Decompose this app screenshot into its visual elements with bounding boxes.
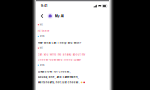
staticText: ME (40, 23, 43, 26)
staticText: My AI (55, 14, 64, 18)
staticText: ME (40, 47, 43, 49)
staticText: MY AI (40, 35, 45, 37)
staticText: Hey! What can I help you with? (38, 41, 81, 44)
button[interactable]: My AI (45, 13, 64, 19)
staticText: Gouda, brie, and camembert, (38, 75, 79, 78)
staticText: Melts hearts, not just cheese. (38, 81, 80, 84)
staticText: Can you write me a haiku about my (38, 53, 85, 56)
button[interactable]: Back (39, 12, 45, 19)
staticText: Hi there (38, 29, 50, 33)
staticText: 9:41 (41, 4, 47, 8)
staticText: MY AI (40, 64, 45, 66)
staticText: cheese-obsessed friend Lukas? (38, 58, 81, 61)
staticText: Lukas's love for cheese, (38, 70, 71, 73)
